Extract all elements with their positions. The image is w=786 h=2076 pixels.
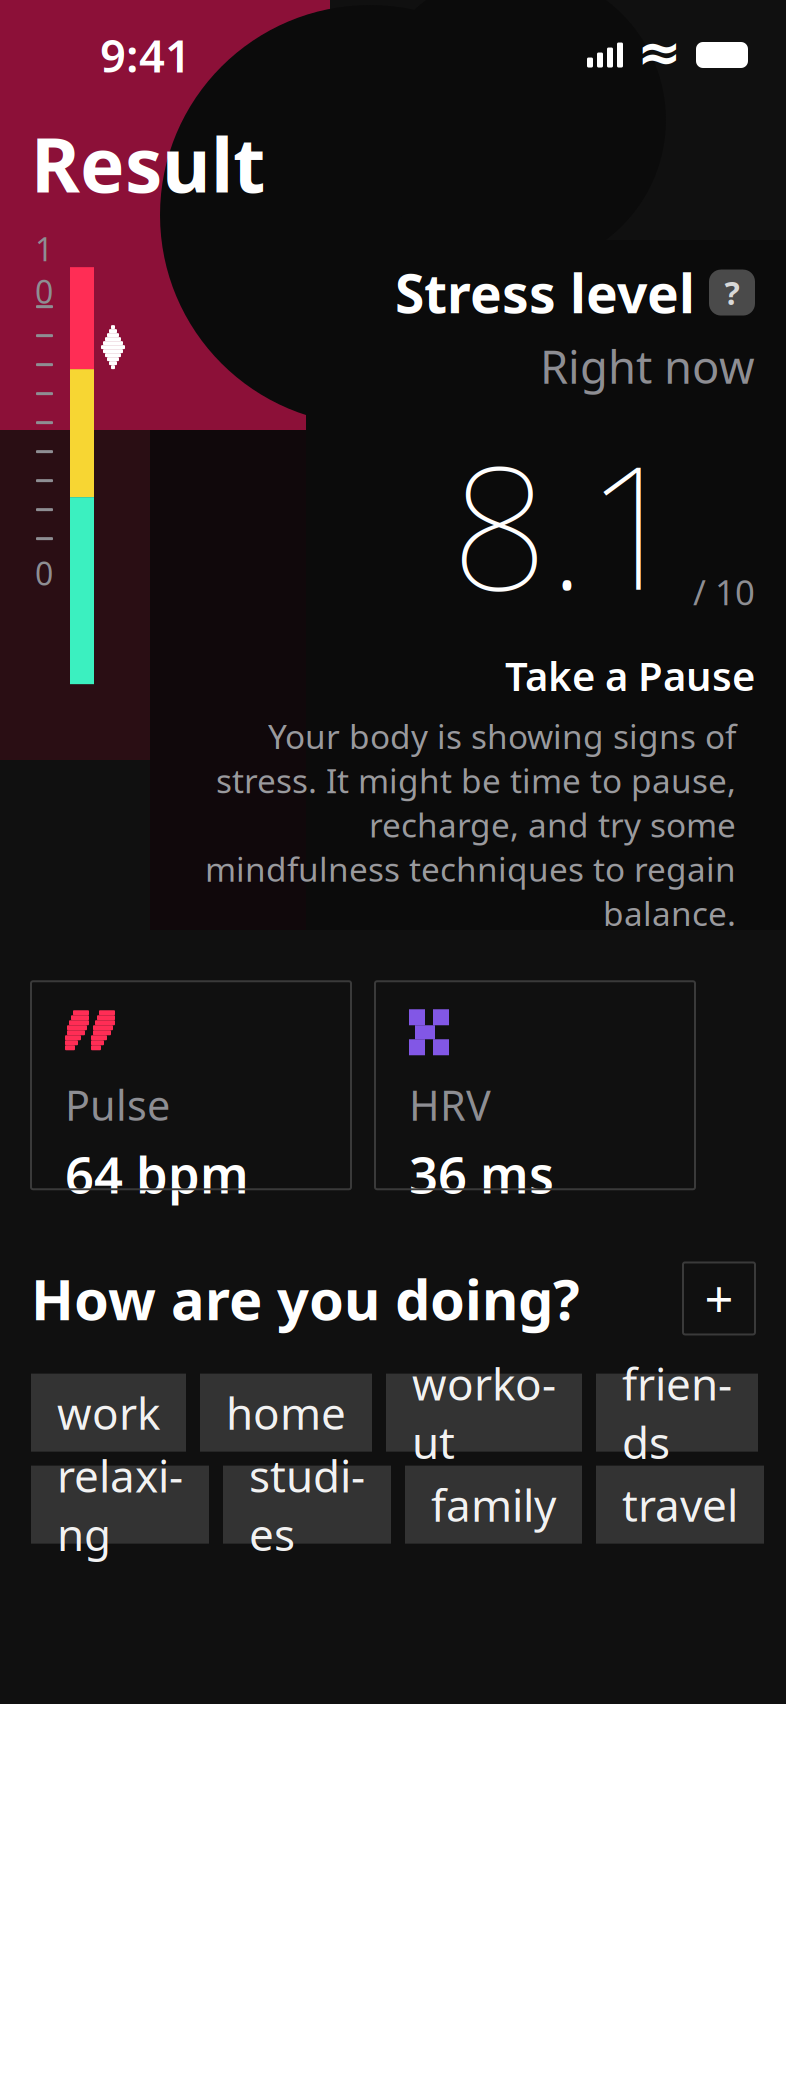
staticText: travel bbox=[622, 1475, 738, 1534]
staticText: Stress level bbox=[395, 257, 695, 328]
button[interactable]: home bbox=[200, 1374, 372, 1452]
button[interactable]: workout bbox=[386, 1374, 582, 1452]
button[interactable]: friends bbox=[596, 1374, 758, 1452]
staticText: ? bbox=[724, 271, 739, 314]
staticText: Right now bbox=[540, 336, 755, 396]
staticText: Result bbox=[31, 114, 265, 213]
staticText: 0 bbox=[35, 552, 53, 594]
staticText: studies bbox=[249, 1446, 365, 1563]
staticText: 64 bpm bbox=[65, 1140, 249, 1207]
staticText: Take a Pause bbox=[505, 649, 755, 702]
button[interactable]: work bbox=[31, 1374, 186, 1452]
staticText: home bbox=[226, 1383, 346, 1442]
button[interactable]: Pulse bbox=[31, 981, 351, 1189]
staticText: workout bbox=[412, 1354, 556, 1471]
staticText: 8.1 bbox=[451, 410, 683, 637]
staticText: work bbox=[57, 1383, 160, 1442]
staticText: friends bbox=[622, 1354, 732, 1471]
staticText: 36 ms bbox=[409, 1140, 554, 1207]
button[interactable]: studies bbox=[223, 1466, 391, 1544]
staticText: 10 bbox=[35, 228, 53, 313]
staticText: + bbox=[704, 1265, 733, 1332]
staticText: / 10 bbox=[693, 569, 755, 615]
button[interactable]: What is stress level? bbox=[709, 270, 755, 316]
staticText: 9:41 bbox=[100, 25, 191, 85]
button[interactable]: family bbox=[405, 1466, 582, 1544]
button[interactable]: relaxing bbox=[31, 1466, 209, 1544]
staticText: Pulse bbox=[65, 1077, 170, 1132]
staticText: family bbox=[431, 1475, 556, 1534]
staticText: How are you doing? bbox=[31, 1261, 580, 1336]
staticText: ≈ bbox=[637, 22, 682, 82]
button[interactable]: travel bbox=[596, 1466, 764, 1544]
staticText: Your body is showing signs of stress. It… bbox=[204, 714, 735, 935]
staticText: relaxing bbox=[57, 1446, 183, 1563]
button[interactable]: Add tag bbox=[683, 1262, 755, 1334]
button[interactable]: HRV bbox=[375, 981, 695, 1189]
staticText: HRV bbox=[409, 1077, 491, 1132]
